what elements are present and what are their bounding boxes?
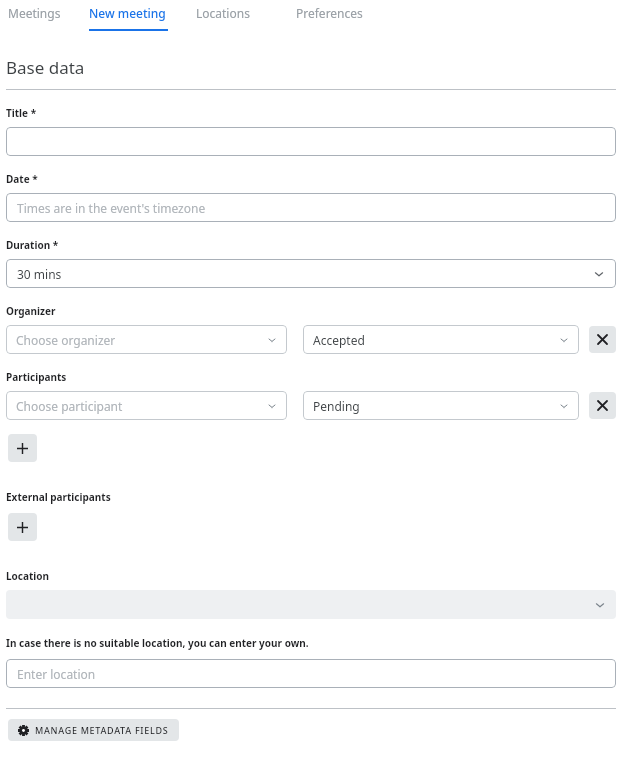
button[interactable]: Accepted [303,325,579,354]
button[interactable] [6,127,616,156]
staticText: Meetings [8,5,61,21]
button[interactable]: Preferences [296,0,382,33]
staticText: Choose participant [16,398,267,414]
staticText: Location [6,569,50,583]
button[interactable]: Add participant [8,434,37,462]
button[interactable]: 30 mins [6,259,616,288]
staticText: 30 mins [17,266,62,282]
staticText: Date * [6,172,38,186]
staticText: Accepted [313,332,559,348]
button[interactable]: New meeting [89,0,169,33]
button[interactable]: Times are in the event's timezone [6,193,616,222]
staticText: External participants [6,490,111,504]
staticText: MANAGE METADATA FIELDS [35,724,169,736]
button[interactable]: Choose organizer [6,325,287,354]
staticText: Participants [6,370,67,384]
button[interactable]: MANAGE METADATA FIELDS [8,719,179,741]
staticText: Organizer [6,304,56,318]
button[interactable]: Remove [589,392,616,419]
button[interactable]: Remove [589,326,616,353]
staticText: Locations [196,5,250,21]
staticText: Choose organizer [16,332,267,348]
button[interactable]: Pending [303,391,579,420]
staticText: Times are in the event's timezone [17,200,206,216]
staticText: Preferences [296,5,363,21]
staticText: Base data [6,56,85,79]
staticText: New meeting [89,5,166,21]
button[interactable]: Locations [196,0,270,33]
staticText: Pending [313,398,559,414]
staticText: Duration * [6,238,59,252]
button[interactable]: Meetings [8,0,78,33]
staticText: Title * [6,106,37,120]
button[interactable]: Enter location [6,659,616,688]
staticText: In case there is no suitable location, y… [6,636,309,650]
button[interactable]: Choose participant [6,391,287,420]
staticText: Enter location [17,666,96,682]
button[interactable]: Add external participant [8,513,37,541]
